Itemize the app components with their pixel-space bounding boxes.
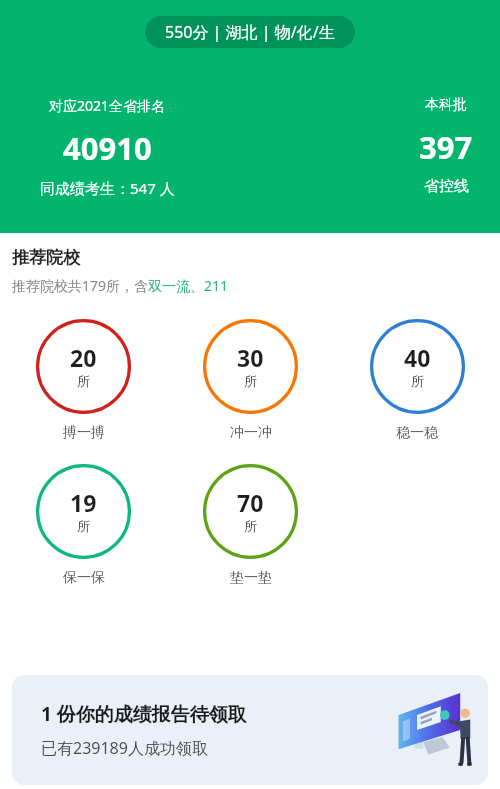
staticText: 40910 [63, 127, 152, 169]
staticText: 推荐院校 [12, 247, 80, 268]
staticText: 所 [411, 373, 424, 389]
staticText: 所 [77, 373, 90, 389]
staticText: 稳一稳 [396, 424, 438, 442]
button[interactable]: 70 [167, 464, 334, 587]
staticText: 1 份你的成绩报告待领取 [41, 701, 247, 727]
staticText: 垫一垫 [230, 569, 272, 587]
staticText: 19 [70, 487, 97, 518]
staticText: 保一保 [63, 569, 105, 587]
button[interactable]: 550分 | 湖北 | 物/化/生 [145, 16, 355, 48]
staticText: 推荐院校共179所，含双一流、211 [12, 276, 229, 295]
staticText: 同成绩考生：547 人 [40, 178, 175, 198]
button[interactable]: 1 份你的成绩报告待领取 [12, 675, 488, 785]
staticText: 70 [237, 487, 264, 518]
staticText: 本科批 [425, 96, 467, 114]
staticText: 所 [244, 373, 257, 389]
button[interactable]: 20 [0, 319, 167, 442]
staticText: 40 [404, 342, 431, 373]
staticText: 冲一冲 [230, 424, 272, 442]
staticText: 对应2021全省排名 [49, 96, 166, 115]
button[interactable]: 30 [167, 319, 334, 442]
staticText: 所 [244, 518, 257, 534]
staticText: 搏一搏 [63, 424, 105, 442]
staticText: 所 [77, 518, 90, 534]
staticText: 省控线 [424, 177, 469, 196]
button[interactable]: 40 [334, 319, 500, 442]
staticText: 20 [70, 342, 97, 373]
staticText: 397 [419, 126, 473, 168]
button[interactable]: 19 [0, 464, 167, 587]
staticText: 550分 | 湖北 | 物/化/生 [165, 21, 335, 43]
staticText: 已有239189人成功领取 [41, 737, 208, 759]
other: 成绩报告插图 [388, 686, 476, 774]
staticText: 30 [237, 342, 264, 373]
